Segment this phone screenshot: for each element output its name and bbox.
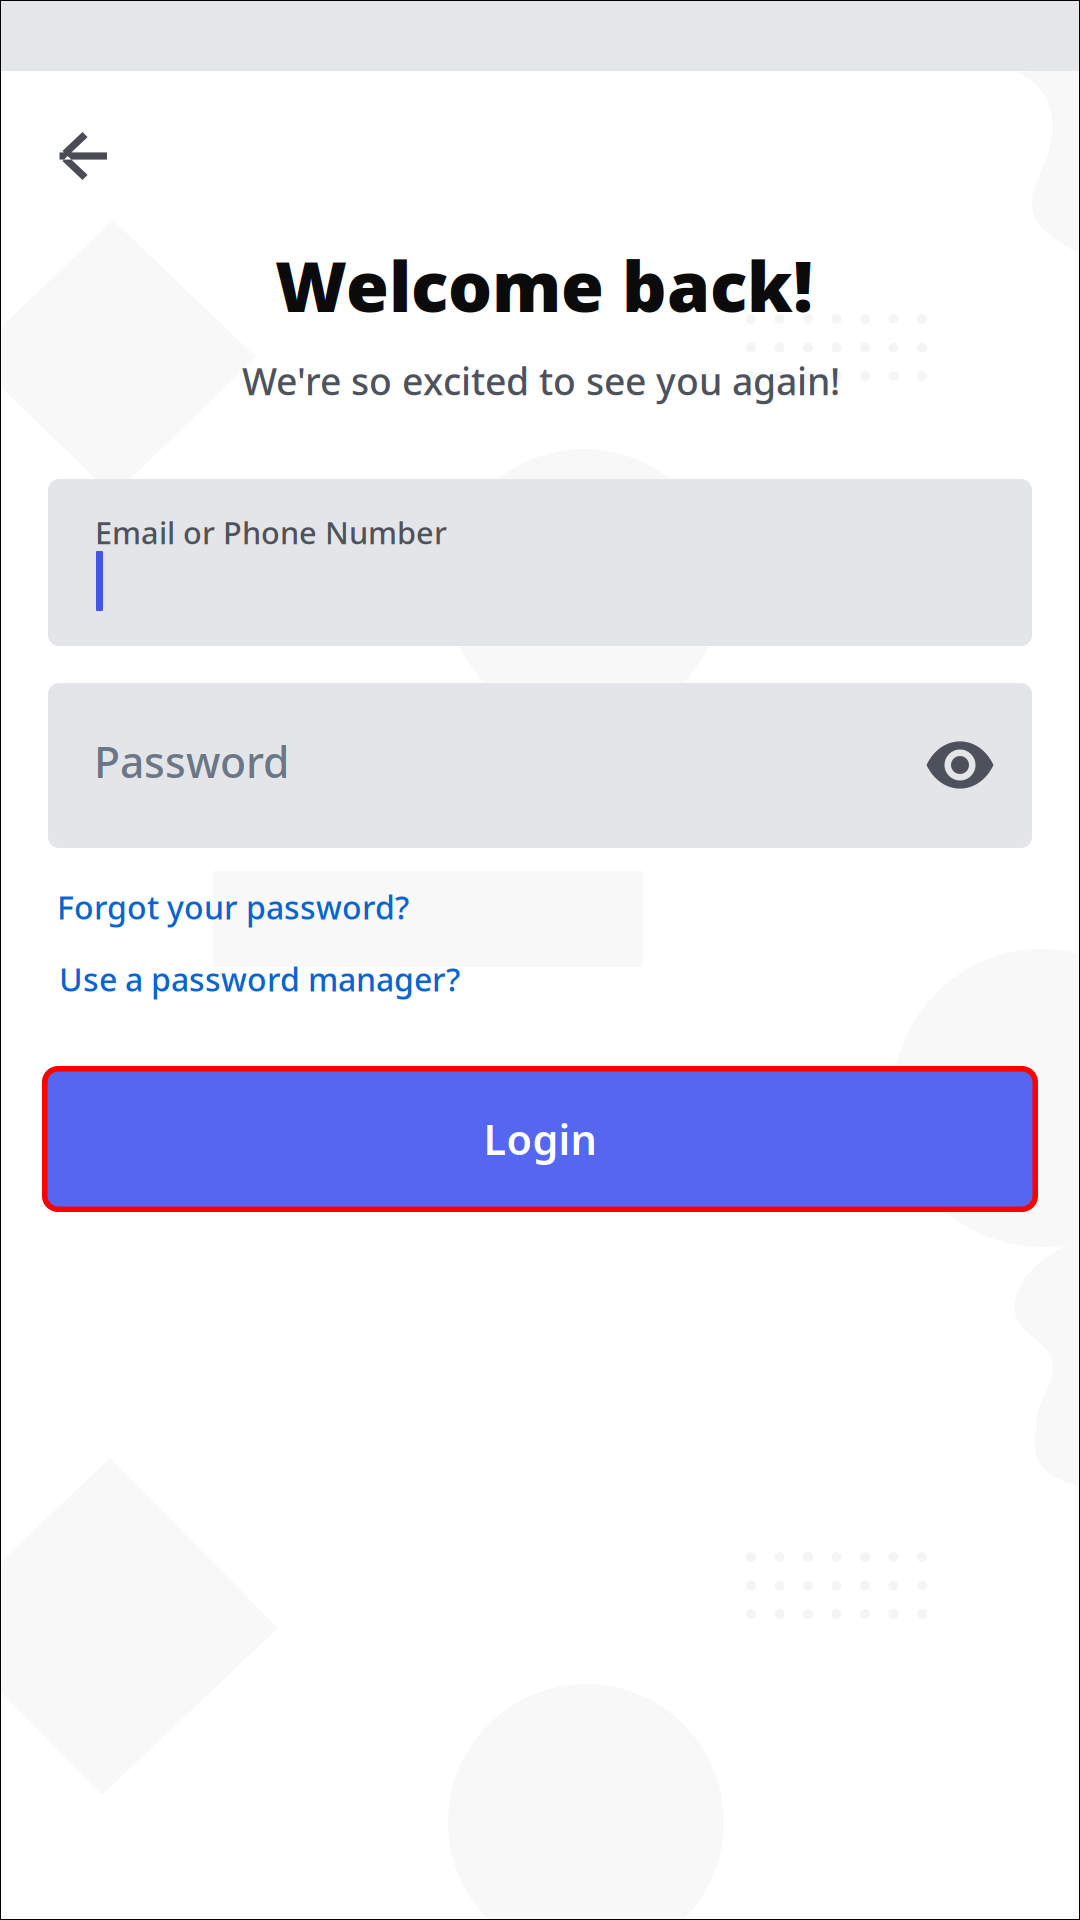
staticText: Welcome back! bbox=[275, 239, 813, 331]
button[interactable]: Show password bbox=[912, 717, 1008, 813]
button[interactable]: Use a password manager? bbox=[59, 952, 479, 1006]
staticText: Email or Phone Number bbox=[95, 512, 447, 553]
staticText: Use a password manager? bbox=[59, 958, 460, 1000]
button[interactable]: Email or Phone Number bbox=[48, 479, 1032, 646]
staticText: Password bbox=[94, 733, 289, 790]
button[interactable]: Back bbox=[35, 108, 131, 204]
button[interactable]: Forgot your password? bbox=[57, 880, 437, 934]
staticText: Forgot your password? bbox=[57, 886, 409, 928]
button[interactable]: Login bbox=[42, 1066, 1038, 1212]
button[interactable]: Password bbox=[48, 683, 1032, 848]
staticText: We're so excited to see you again! bbox=[242, 356, 840, 406]
staticText: Login bbox=[483, 1112, 596, 1166]
